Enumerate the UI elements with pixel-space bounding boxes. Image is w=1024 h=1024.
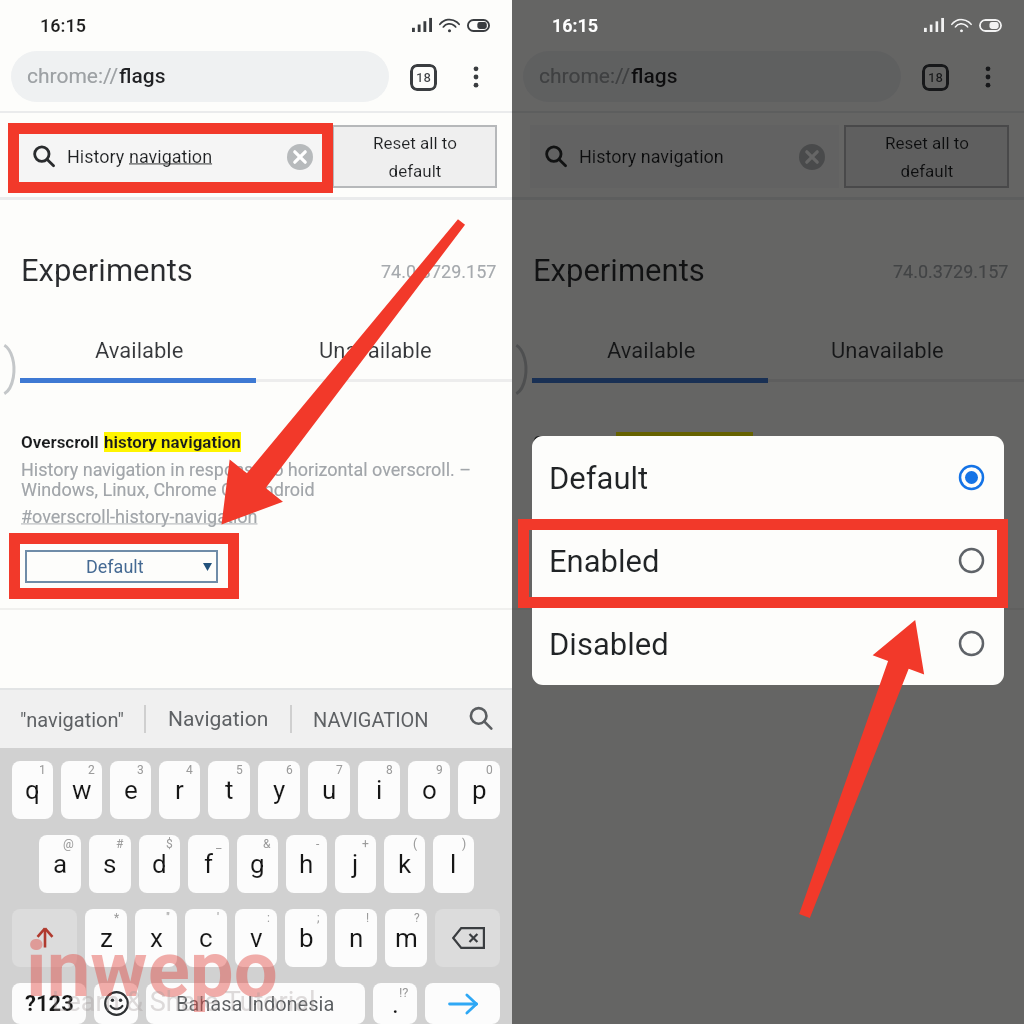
staticText: 1 — [39, 763, 46, 777]
staticText: 16:15 — [40, 15, 87, 36]
staticText: Overscroll — [21, 432, 104, 452]
staticText: 4 — [186, 763, 193, 777]
button[interactable]: t — [208, 761, 250, 819]
staticText: 8 — [386, 763, 393, 777]
button[interactable]: v — [235, 909, 277, 967]
button[interactable]: d — [139, 835, 180, 893]
staticText: ' — [217, 911, 220, 925]
staticText: Default — [86, 556, 144, 577]
button[interactable]: Enter — [425, 983, 500, 1024]
button[interactable]: Emoji — [94, 983, 138, 1024]
button[interactable]: Search — [450, 690, 512, 748]
staticText: NAVIGATION — [313, 708, 429, 731]
staticText: Navigation — [168, 707, 269, 732]
button[interactable]: f — [188, 835, 229, 893]
button[interactable]: "navigation" — [0, 690, 144, 748]
other: Tabs — [911, 53, 959, 101]
button[interactable]: Default — [532, 436, 1004, 519]
staticText: f — [204, 849, 214, 879]
button[interactable]: o — [408, 761, 450, 819]
button[interactable]: y — [258, 761, 300, 819]
button[interactable]: x — [135, 909, 177, 967]
staticText: l — [450, 849, 457, 879]
staticText: w — [72, 775, 92, 805]
button[interactable]: j — [335, 835, 376, 893]
button[interactable]: Unavailable — [257, 322, 493, 380]
staticText: Default — [598, 556, 656, 577]
button[interactable]: More options — [452, 53, 500, 101]
staticText: e — [124, 775, 138, 805]
button[interactable]: History — [18, 125, 327, 188]
staticText: ?123 — [25, 991, 74, 1017]
button[interactable]: a — [39, 835, 81, 893]
button[interactable]: h — [286, 835, 327, 893]
staticText: t — [225, 775, 234, 805]
button[interactable]: c — [185, 909, 227, 967]
button[interactable]: chrome:// — [11, 51, 389, 102]
staticText: z — [100, 923, 113, 953]
staticText: "navigation" — [20, 708, 124, 731]
button[interactable]: u — [308, 761, 350, 819]
button[interactable]: Symbols — [12, 983, 86, 1024]
button[interactable]: m — [385, 909, 427, 967]
button[interactable]: p — [458, 761, 500, 819]
staticText: u — [322, 775, 337, 805]
staticText: 3 — [137, 763, 144, 777]
staticText: History navigation — [579, 146, 724, 167]
staticText: Available — [95, 338, 184, 364]
staticText: Disabled — [549, 626, 669, 662]
button[interactable]: r — [159, 761, 200, 819]
staticText: j — [352, 849, 359, 879]
staticText: Available — [607, 338, 696, 364]
button[interactable]: Period — [373, 983, 417, 1024]
staticText: q — [25, 775, 40, 805]
button[interactable]: w — [61, 761, 102, 819]
staticText: m — [395, 923, 418, 953]
button[interactable]: Default — [25, 550, 218, 583]
staticText: # — [116, 837, 124, 851]
button[interactable]: Space — [146, 983, 365, 1024]
staticText: Enabled — [549, 543, 660, 579]
button[interactable]: Available — [21, 322, 257, 380]
button[interactable]: Navigation — [146, 690, 290, 748]
button[interactable]: q — [12, 761, 53, 819]
button[interactable]: i — [358, 761, 400, 819]
staticText: a — [53, 849, 68, 879]
button[interactable]: Disabled — [532, 602, 1004, 685]
button[interactable]: z — [85, 909, 127, 967]
button[interactable]: b — [285, 909, 327, 967]
staticText: Windows, Linux, Chrome OS, Android — [533, 479, 827, 500]
staticText: ) — [462, 837, 467, 851]
staticText: ! — [366, 911, 370, 925]
button[interactable]: Tabs — [399, 53, 447, 101]
button[interactable]: g — [237, 835, 278, 893]
staticText: ? — [414, 911, 420, 925]
button[interactable]: s — [89, 835, 131, 893]
staticText: . — [392, 989, 399, 1019]
staticText: History — [67, 146, 129, 167]
staticText: Experiments — [533, 252, 705, 288]
staticText: * — [114, 911, 120, 925]
staticText: : — [267, 911, 270, 925]
button[interactable]: NAVIGATION — [292, 690, 450, 748]
staticText: r — [175, 775, 184, 805]
staticText: Reset all to default — [885, 133, 969, 181]
staticText: history navigation — [104, 432, 241, 452]
staticText: 0 — [486, 763, 493, 777]
button[interactable]: l — [433, 835, 474, 893]
staticText: #overscroll-history-navigation — [21, 506, 258, 527]
staticText: navigation — [129, 146, 213, 167]
button[interactable]: e — [110, 761, 151, 819]
staticText: o — [422, 775, 437, 805]
staticText: 74.0.3729.157 — [893, 261, 1009, 282]
button[interactable]: Enabled — [532, 519, 1004, 602]
button[interactable]: Reset all to default — [332, 125, 497, 188]
button[interactable]: Backspace — [435, 909, 500, 967]
button[interactable]: n — [335, 909, 377, 967]
staticText: chrome:// — [27, 64, 119, 89]
button[interactable]: k — [384, 835, 425, 893]
staticText: n — [349, 923, 364, 953]
staticText: 2 — [88, 763, 95, 777]
staticText: Windows, Linux, Chrome OS, Android — [21, 479, 315, 500]
button[interactable]: Shift — [12, 909, 77, 967]
